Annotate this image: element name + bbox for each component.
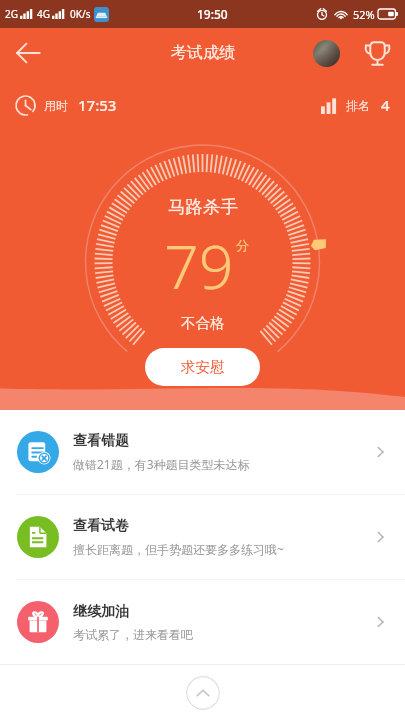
- staticText: 马路杀手: [168, 196, 238, 218]
- staticText: 用时: [44, 98, 68, 113]
- staticText: 查看错题: [73, 432, 129, 450]
- staticText: 求安慰: [181, 358, 225, 376]
- staticText: 0K/s: [70, 7, 91, 21]
- staticText: 4G: [37, 7, 50, 21]
- staticText: 排名: [346, 98, 370, 113]
- button[interactable]: Trophy: [359, 35, 395, 71]
- staticText: 52%: [353, 7, 375, 22]
- staticText: 17:53: [78, 95, 117, 115]
- staticText: 19:50: [197, 6, 228, 22]
- button[interactable]: Scroll to top: [186, 676, 220, 710]
- button[interactable]: 继续加油: [0, 580, 405, 664]
- staticText: 4: [381, 95, 390, 115]
- button[interactable]: Profile: [309, 36, 343, 70]
- button[interactable]: 查看错题: [0, 410, 405, 494]
- staticText: 分: [236, 237, 249, 253]
- staticText: 继续加油: [73, 603, 129, 621]
- staticText: 做错21题，有3种题目类型未达标: [73, 456, 250, 472]
- staticText: 2G: [5, 7, 18, 21]
- staticText: 查看试卷: [73, 517, 129, 535]
- staticText: 擅长距离题，但手势题还要多多练习哦~: [73, 541, 284, 557]
- staticText: 考试成绩: [171, 43, 235, 63]
- button[interactable]: Back: [6, 31, 50, 75]
- button[interactable]: 查看试卷: [0, 495, 405, 579]
- staticText: 考试累了，进来看看吧: [73, 627, 193, 642]
- button[interactable]: 求安慰: [145, 348, 260, 386]
- staticText: 不合格: [181, 314, 225, 332]
- staticText: 79: [164, 224, 234, 307]
